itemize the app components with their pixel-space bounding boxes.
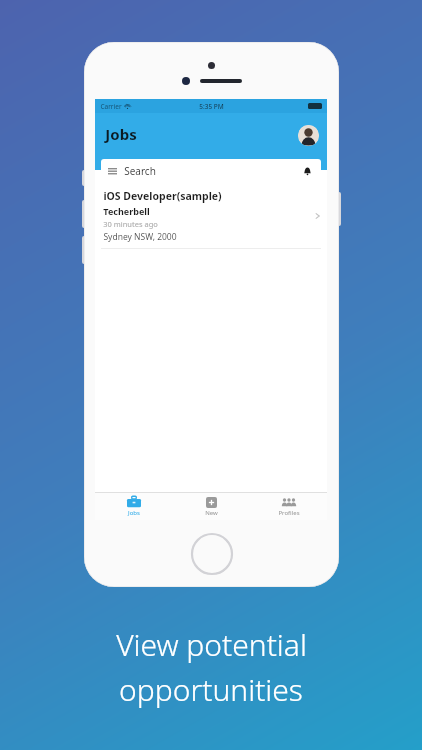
button[interactable]: Jobs bbox=[95, 493, 173, 520]
staticText: Carrier bbox=[100, 102, 122, 111]
staticText: 5:35 PM bbox=[199, 102, 224, 111]
button[interactable]: New bbox=[173, 493, 250, 520]
button[interactable]: Profiles bbox=[250, 493, 327, 520]
staticText: Techerbell bbox=[103, 205, 150, 217]
staticText: Jobs bbox=[105, 124, 137, 144]
button[interactable]: Notifications bbox=[298, 162, 316, 180]
staticText: Sydney NSW, 2000 bbox=[103, 231, 177, 243]
staticText: iOS Developer(sample) bbox=[103, 189, 222, 203]
button[interactable]: Search bbox=[101, 159, 321, 183]
staticText: 30 minutes ago bbox=[103, 219, 158, 229]
staticText: View potential bbox=[116, 624, 307, 665]
staticText: Profiles bbox=[278, 509, 300, 517]
staticText: opportunities bbox=[119, 669, 303, 710]
staticText: Search bbox=[124, 164, 156, 178]
staticText: Jobs bbox=[128, 509, 140, 517]
staticText: New bbox=[205, 509, 218, 517]
button[interactable]: iOS Developer(sample) bbox=[95, 183, 327, 248]
button[interactable]: Profile bbox=[298, 125, 319, 146]
